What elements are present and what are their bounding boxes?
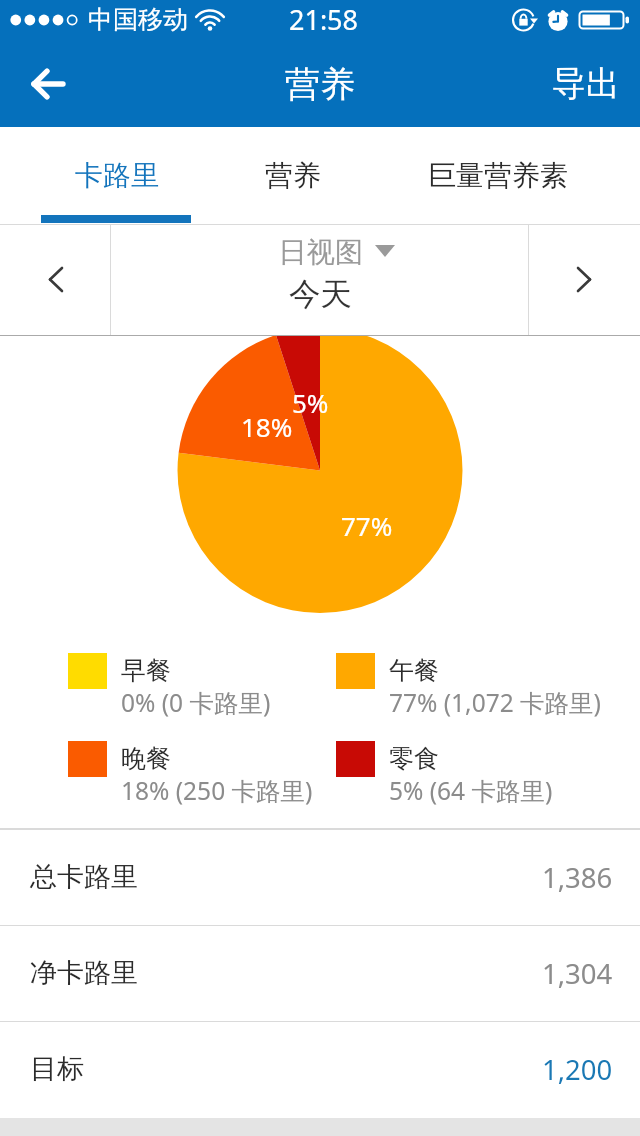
staticText: 5%	[292, 385, 329, 420]
button[interactable]: 营养	[218, 127, 368, 225]
button[interactable]: 总卡路里	[0, 829, 640, 925]
staticText: 1,200	[542, 1051, 613, 1088]
button[interactable]: 净卡路里	[0, 925, 640, 1021]
button[interactable]: 卡路里	[42, 127, 192, 225]
button[interactable]: 巨量营养素	[408, 127, 588, 225]
staticText: 1,386	[542, 859, 613, 896]
staticText: 卡路里	[75, 158, 159, 193]
staticText: 巨量营养素	[428, 158, 568, 193]
button[interactable]: 目标	[0, 1021, 640, 1117]
button[interactable]: 导出	[522, 40, 640, 127]
staticText: 早餐	[121, 655, 171, 686]
button[interactable]: Next day	[527, 225, 638, 336]
staticText: 净卡路里	[30, 956, 138, 990]
staticText: 中国移动	[88, 4, 188, 35]
staticText: 18%	[241, 409, 293, 444]
staticText: 0% (0 卡路里)	[121, 686, 271, 719]
staticText: 77% (1,072 卡路里)	[389, 686, 601, 719]
staticText: 18% (250 卡路里)	[121, 774, 313, 807]
staticText: 日视图	[278, 235, 364, 271]
button[interactable]: 日视图	[111, 225, 528, 336]
staticText: 午餐	[389, 655, 439, 686]
staticText: 今天	[289, 275, 352, 315]
button[interactable]: Back	[0, 40, 95, 127]
staticText: 晚餐	[121, 743, 171, 774]
staticText: 营养	[285, 62, 355, 106]
staticText: 导出	[552, 62, 620, 105]
staticText: 零食	[389, 743, 439, 774]
button[interactable]: Previous day	[0, 225, 110, 336]
staticText: 营养	[265, 158, 321, 193]
staticText: 总卡路里	[30, 860, 138, 894]
staticText: 目标	[30, 1052, 84, 1086]
staticText: 5% (64 卡路里)	[389, 774, 553, 807]
staticText: 77%	[341, 508, 393, 543]
staticText: 21:58	[289, 1, 359, 38]
staticText: 1,304	[542, 955, 613, 992]
